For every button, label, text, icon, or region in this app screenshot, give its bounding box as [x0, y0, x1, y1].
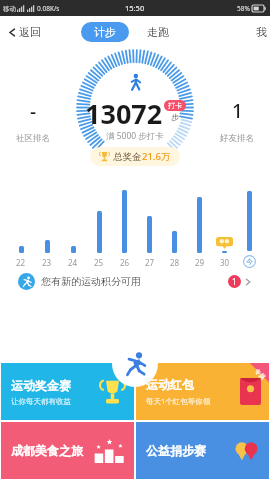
staticText: 好友排名: [220, 133, 254, 144]
staticText: 24: [68, 257, 78, 268]
button[interactable]: 26: [112, 185, 137, 268]
staticText: 移动: [3, 5, 16, 13]
button[interactable]: 23: [34, 185, 60, 268]
staticText: 1: [232, 276, 237, 287]
staticText: -: [30, 98, 37, 124]
staticText: 21.6万: [142, 150, 171, 163]
staticText: 让你每天都有收益: [11, 397, 71, 406]
staticText: 计步: [94, 25, 116, 39]
staticText: 您有新的运动积分可用: [41, 275, 141, 288]
button[interactable]: 30: [212, 185, 237, 268]
button[interactable]: 您有新的运动积分可用: [12, 268, 258, 295]
staticText: 专属: [253, 367, 267, 381]
staticText: 运动奖金赛: [11, 378, 71, 393]
button[interactable]: 27: [137, 185, 162, 268]
staticText: 今: [246, 257, 253, 266]
staticText: 29: [195, 257, 205, 268]
staticText: 打卡: [168, 101, 182, 110]
button[interactable]: 成都美食之旅: [1, 422, 134, 479]
button[interactable]: 计步: [81, 22, 129, 42]
button[interactable]: 开始运动: [112, 341, 158, 387]
staticText: 公益捐步赛: [146, 443, 206, 458]
staticText: 社区排名: [16, 133, 50, 144]
button[interactable]: 公益捐步赛: [136, 422, 269, 479]
button[interactable]: 22: [8, 185, 34, 268]
staticText: 26: [120, 257, 130, 268]
staticText: 15:50: [125, 3, 145, 13]
staticText: 成都美食之旅: [11, 443, 83, 458]
button[interactable]: 总奖金: [90, 147, 180, 166]
staticText: 我: [256, 25, 267, 39]
button[interactable]: 运动红包: [136, 363, 269, 420]
button[interactable]: 运动奖金赛: [1, 363, 134, 420]
staticText: 运动红包: [146, 377, 194, 392]
button[interactable]: 今: [237, 183, 262, 268]
button[interactable]: 我: [253, 21, 270, 43]
staticText: 每天1个红包等你领: [146, 396, 211, 406]
button[interactable]: 走跑: [143, 22, 173, 42]
button[interactable]: 返回: [0, 21, 45, 43]
staticText: 总奖金: [113, 151, 142, 163]
button[interactable]: 28: [162, 185, 187, 268]
button[interactable]: 29: [187, 185, 212, 268]
staticText: 25: [94, 257, 104, 268]
staticText: 23: [42, 257, 52, 268]
staticText: 1: [232, 98, 243, 124]
staticText: 28: [170, 257, 180, 268]
staticText: 步: [171, 112, 179, 122]
staticText: 走跑: [147, 25, 169, 39]
staticText: 58%: [237, 4, 250, 13]
button[interactable]: 25: [86, 185, 112, 268]
staticText: 助力: [118, 367, 132, 381]
staticText: 22: [16, 257, 26, 268]
button[interactable]: 打卡: [164, 100, 186, 111]
staticText: 满 5000 步打卡: [106, 130, 164, 142]
staticText: 30: [220, 257, 230, 268]
staticText: 13072: [85, 95, 163, 132]
button[interactable]: 24: [60, 185, 86, 268]
staticText: 27: [145, 257, 155, 268]
staticText: 返回: [19, 25, 41, 39]
staticText: 0.08K/s: [37, 4, 60, 13]
